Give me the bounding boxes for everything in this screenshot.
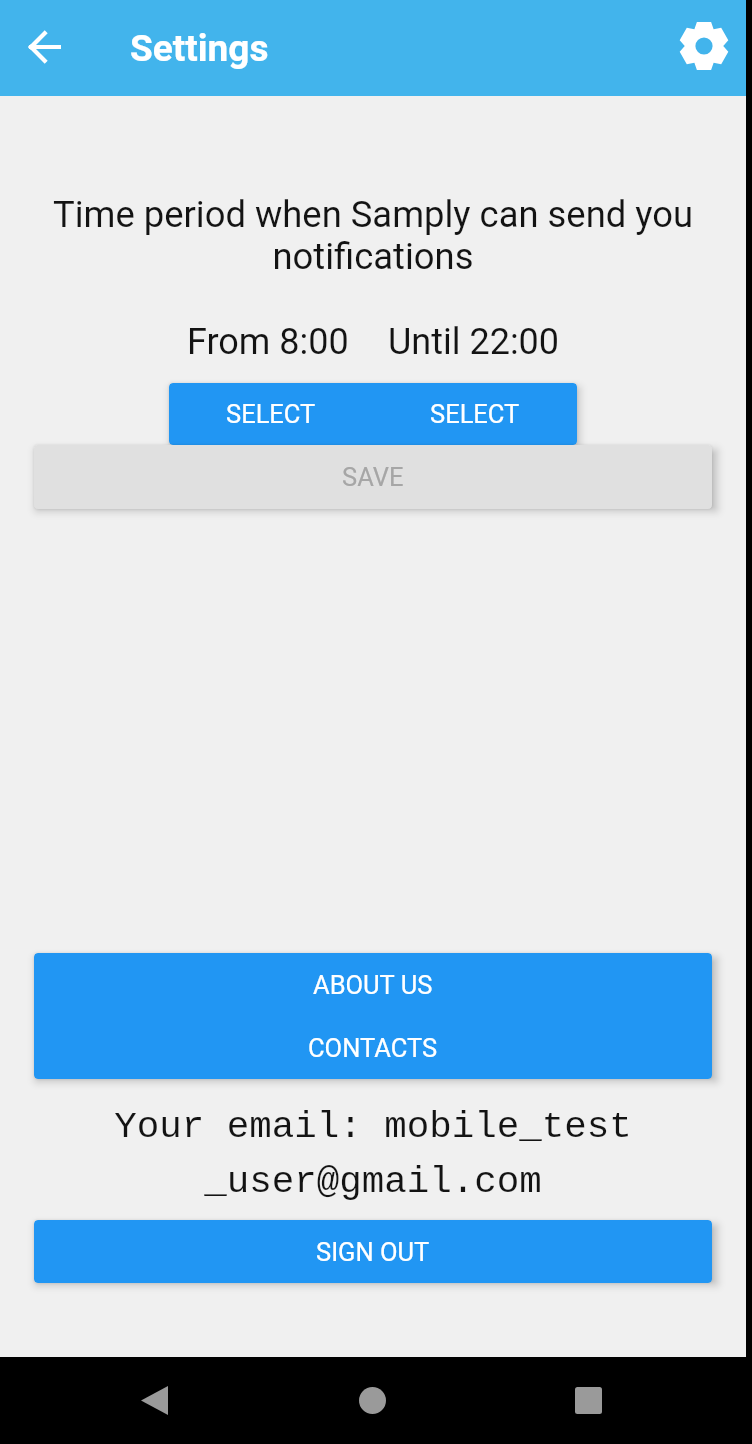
staticText: Time period when Samply can send you not… bbox=[0, 193, 746, 278]
button[interactable]: Back bbox=[110, 1357, 198, 1444]
button[interactable]: SAVE bbox=[34, 445, 712, 509]
staticText: Until 22:00 bbox=[388, 321, 560, 363]
staticText: SELECT bbox=[226, 399, 316, 429]
staticText: SIGN OUT bbox=[316, 1237, 430, 1267]
button[interactable]: ABOUT US bbox=[34, 953, 712, 1016]
staticText: SAVE bbox=[342, 462, 404, 492]
staticText: From 8:00 bbox=[187, 321, 349, 363]
button[interactable]: SELECT bbox=[373, 383, 577, 445]
button[interactable]: Back bbox=[0, 0, 88, 96]
button[interactable]: Home bbox=[328, 1357, 416, 1444]
staticText: SELECT bbox=[430, 399, 520, 429]
button[interactable]: SELECT bbox=[169, 383, 373, 445]
button[interactable]: CONTACTS bbox=[34, 1016, 712, 1079]
staticText: ABOUT US bbox=[313, 970, 433, 1000]
button[interactable]: Recents bbox=[544, 1357, 632, 1444]
button[interactable]: SIGN OUT bbox=[34, 1220, 712, 1283]
button[interactable]: Settings bbox=[662, 0, 746, 96]
staticText: CONTACTS bbox=[308, 1033, 438, 1063]
staticText: Your email: mobile_test _user@gmail.com bbox=[0, 1106, 746, 1204]
staticText: Settings bbox=[130, 27, 269, 70]
